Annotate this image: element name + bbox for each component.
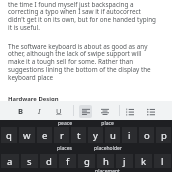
button[interactable]: Align center — [98, 105, 111, 118]
staticText: g — [84, 155, 90, 168]
button[interactable]: p — [156, 127, 171, 143]
button[interactable]: f — [59, 154, 76, 168]
button[interactable]: r — [54, 127, 69, 143]
button[interactable]: I — [32, 104, 46, 118]
staticText: t — [77, 129, 81, 142]
button[interactable]: h — [97, 154, 114, 168]
staticText: o — [144, 129, 150, 142]
staticText: y — [93, 129, 98, 142]
button[interactable]: place — [86, 120, 129, 127]
button[interactable]: g — [78, 154, 95, 168]
staticText: l — [161, 155, 164, 168]
button[interactable]: l — [154, 154, 171, 168]
staticText: a — [7, 155, 13, 168]
button[interactable]: placement — [86, 168, 129, 172]
staticText: placeholder — [94, 145, 122, 152]
button[interactable]: Bulleted list — [144, 105, 157, 118]
staticText: The software keyboard is about as good a… — [8, 42, 159, 82]
staticText: h — [103, 155, 109, 168]
button[interactable]: d — [40, 154, 57, 168]
staticText: f — [66, 155, 70, 168]
button[interactable]: t — [71, 127, 86, 143]
button[interactable]: places — [43, 143, 86, 154]
button[interactable]: y — [88, 127, 103, 143]
staticText: places — [57, 145, 72, 152]
button[interactable]: i — [122, 127, 137, 143]
staticText: p — [161, 129, 167, 142]
button[interactable]: a — [1, 154, 19, 168]
button[interactable]: B — [14, 104, 28, 118]
staticText: placement — [95, 168, 120, 172]
staticText: Hardware Design — [8, 95, 59, 103]
staticText: j — [123, 155, 126, 168]
staticText: r — [60, 129, 64, 142]
button[interactable]: Align left — [79, 105, 92, 118]
button[interactable]: peace — [43, 120, 86, 127]
staticText: the time I found myself just backspacing… — [8, 0, 159, 32]
staticText: i — [128, 129, 131, 142]
button[interactable]: e — [37, 127, 52, 143]
staticText: place — [101, 120, 114, 127]
staticText: u — [110, 129, 116, 142]
button[interactable]: o — [139, 127, 154, 143]
staticText: B — [18, 106, 24, 116]
staticText: s — [27, 155, 32, 168]
button[interactable]: s — [21, 154, 38, 168]
button[interactable]: u — [105, 127, 120, 143]
staticText: I — [38, 106, 41, 116]
staticText: d — [46, 155, 52, 168]
staticText: U — [56, 106, 62, 116]
button[interactable]: U — [52, 104, 66, 118]
staticText: k — [141, 155, 147, 168]
button[interactable]: j — [116, 154, 133, 168]
staticText: w — [23, 129, 31, 142]
button[interactable]: q — [1, 127, 17, 143]
button[interactable]: placeholder — [86, 143, 129, 154]
button[interactable]: w — [19, 127, 35, 143]
staticText: peace — [58, 120, 72, 127]
button[interactable]: Numbered list — [123, 105, 136, 118]
button[interactable]: k — [135, 154, 152, 168]
staticText: q — [6, 129, 12, 142]
staticText: e — [42, 129, 48, 142]
